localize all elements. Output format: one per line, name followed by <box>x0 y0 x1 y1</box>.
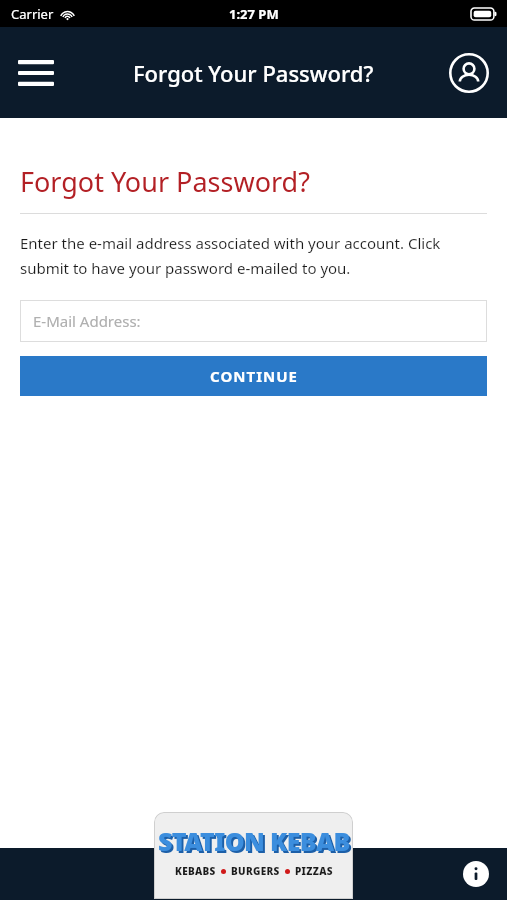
staticText: KEBABS <box>175 864 216 878</box>
button[interactable]: E-Mail Address: <box>20 300 487 342</box>
staticText: E-Mail Address: <box>33 311 141 331</box>
button[interactable]: STATION KEBAB <box>154 812 353 899</box>
staticText: BURGERS <box>231 864 280 878</box>
staticText: Forgot Your Password? <box>133 58 374 88</box>
button[interactable]: Account <box>443 47 495 99</box>
staticText: STATION KEBAB <box>160 826 352 860</box>
button[interactable]: Information <box>459 857 493 891</box>
staticText: CONTINUE <box>210 366 298 386</box>
staticText: 1:27 PM <box>229 5 279 23</box>
staticText: Enter the e-mail address associated with… <box>20 233 487 278</box>
button[interactable]: CONTINUE <box>20 356 487 396</box>
staticText: Forgot Your Password? <box>20 163 310 200</box>
staticText: Carrier <box>11 5 54 23</box>
staticText: PIZZAS <box>295 864 333 878</box>
button[interactable]: Menu <box>10 47 62 99</box>
staticText: STATION KEBAB <box>158 824 350 858</box>
